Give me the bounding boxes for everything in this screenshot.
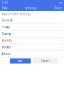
staticText: Settings [25,6,36,10]
button[interactable]: Privacy [0,24,64,31]
button[interactable]: Display [0,31,64,37]
staticText: General [2,19,13,22]
staticText: Sounds [2,39,12,42]
staticText: › [61,51,62,57]
button[interactable]: Cancel [33,58,58,63]
staticText: Back [2,6,7,10]
staticText: 9:41 [2,1,9,4]
staticText: Display [2,32,11,36]
button[interactable]: Save [10,58,31,63]
staticText: › [61,18,62,23]
staticText: Storage [2,45,12,49]
staticText: Account and settings [2,12,31,16]
button[interactable]: Sounds [0,37,64,44]
staticText: › [61,45,62,50]
staticText: Done [54,6,62,10]
button[interactable]: Done [54,6,62,10]
staticText: Save [18,59,23,63]
staticText: About [2,52,11,56]
button[interactable]: General [0,17,64,24]
button[interactable]: Storage [0,44,64,51]
button[interactable]: About [0,51,64,57]
staticText: › [61,24,62,30]
staticText: Cancel [41,59,50,63]
staticText: › [61,38,62,43]
staticText: Privacy [2,25,10,29]
button[interactable]: Back [2,6,7,10]
staticText: ▮▮▮ [59,2,62,3]
staticText: › [61,31,62,36]
